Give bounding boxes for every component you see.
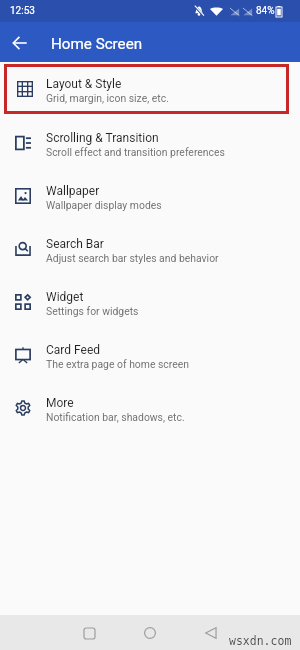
button[interactable]: Layout & Style (4, 64, 289, 114)
button[interactable]: Wallpaper (0, 169, 300, 222)
staticText: Settings for widgets (46, 305, 139, 317)
staticText: Layout & Style (46, 77, 122, 91)
button[interactable]: Widget (0, 275, 300, 328)
staticText: Scroll effect and transition preferences (46, 146, 225, 158)
staticText: 84% (256, 5, 275, 17)
staticText: wsxdn.com (229, 634, 292, 647)
button[interactable]: Card Feed (0, 328, 300, 381)
staticText: The extra page of home screen (46, 358, 189, 370)
staticText: 12:53 (10, 5, 35, 17)
button[interactable]: Home (137, 620, 163, 646)
staticText: Grid, margin, icon size, etc. (46, 92, 169, 104)
button[interactable]: Recent apps (76, 620, 102, 646)
button[interactable]: Search Bar (0, 222, 300, 275)
button[interactable]: More (0, 381, 300, 434)
staticText: More (46, 396, 74, 410)
staticText: Adjust search bar styles and behavior (46, 252, 219, 264)
button[interactable]: Scrolling & Transition (0, 116, 300, 169)
staticText: Home Screen (51, 35, 143, 53)
staticText: Scrolling & Transition (46, 131, 159, 145)
staticText: Wallpaper display modes (46, 199, 162, 211)
button[interactable]: Back (8, 31, 32, 55)
staticText: Notification bar, shadows, etc. (46, 411, 185, 423)
staticText: Widget (46, 290, 84, 304)
staticText: Wallpaper (46, 184, 100, 198)
staticText: Card Feed (46, 343, 101, 357)
button[interactable]: Back (198, 620, 224, 646)
staticText: Search Bar (46, 237, 104, 251)
